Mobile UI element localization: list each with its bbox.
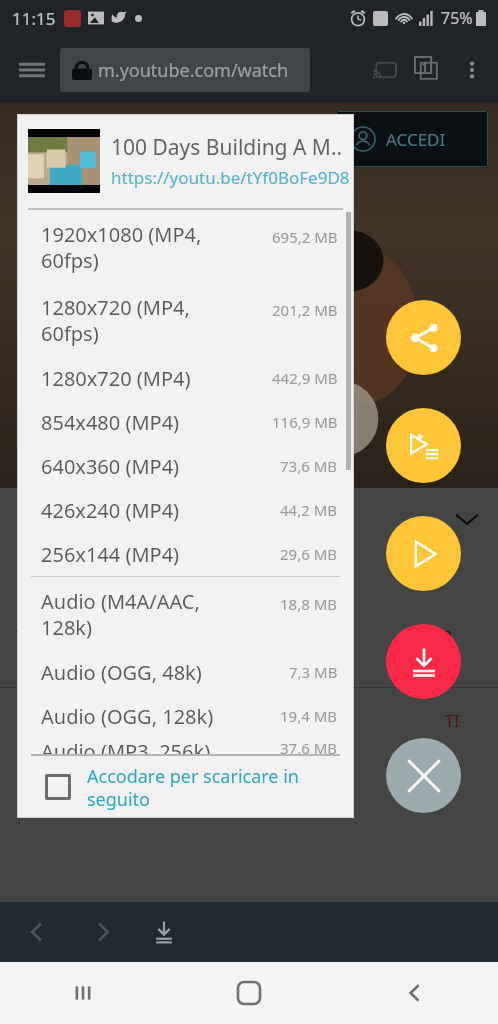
staticText: Audio (MP3, 256k) (41, 738, 280, 754)
staticText: 7,3 MB (289, 662, 338, 682)
staticText: TI (445, 710, 460, 732)
staticText: https://youtu.be/tYf0BoFe9D8 (111, 166, 350, 189)
button[interactable]: 640x360 (MP4) (17, 444, 354, 488)
staticText: 11:15 (12, 7, 56, 30)
button[interactable]: 256x144 (MP4) (17, 532, 354, 576)
button[interactable]: m.youtube.com/watch (60, 48, 310, 92)
staticText: 201,2 MB (272, 300, 338, 320)
button[interactable]: More options (450, 48, 494, 92)
staticText: 426x240 (MP4) (41, 497, 280, 524)
staticText: 18,8 MB (280, 594, 338, 614)
button[interactable]: Downloads (138, 906, 190, 958)
staticText: 100 Days Building A M.. (111, 133, 343, 162)
button[interactable]: Recents (0, 962, 166, 1024)
staticText: 37,6 MB (280, 738, 338, 754)
staticText: 1280x720 (MP4, 60fps) (41, 294, 272, 346)
staticText: 1 (421, 58, 429, 76)
staticText: 116,9 MB (272, 412, 338, 432)
button[interactable]: Download (386, 624, 461, 699)
button[interactable]: 426x240 (MP4) (17, 488, 354, 532)
staticText: Commenti · 75.495 (18, 951, 169, 974)
button[interactable]: Audio (OGG, 128k) (17, 694, 354, 738)
staticText: 29,6 MB (280, 544, 338, 564)
button[interactable]: 1280x720 (MP4) (17, 356, 354, 400)
staticText: 44,2 MB (280, 500, 338, 520)
staticText: 75% (441, 7, 473, 29)
staticText: s Ro (16, 496, 56, 523)
button[interactable]: Playlist (386, 408, 461, 483)
staticText: 854x480 (MP4) (41, 409, 272, 436)
staticText: va (16, 623, 33, 643)
staticText: 1920x1080 (MP4, 60fps) (41, 221, 272, 273)
button[interactable]: Tabs (406, 48, 450, 92)
button[interactable]: Audio (MP3, 256k) (17, 738, 354, 754)
button[interactable]: 854x480 (MP4) (17, 400, 354, 444)
button[interactable]: Menu (10, 48, 54, 92)
staticText: ula (430, 623, 452, 643)
button[interactable]: Home (166, 962, 332, 1024)
staticText: Audio (M4A/AAC, 128k) (41, 588, 280, 640)
staticText: 695,2 MB (272, 227, 338, 247)
staticText: 1280x720 (MP4) (41, 365, 272, 392)
staticText: Audio (OGG, 128k) (41, 703, 280, 730)
button[interactable]: Cast (362, 48, 406, 92)
button[interactable]: Play (386, 516, 461, 591)
button[interactable]: Back (332, 962, 498, 1024)
staticText: Accodare per scaricare in seguito (87, 764, 299, 811)
staticText: 442,9 MB (272, 368, 338, 388)
button[interactable]: Forward (76, 906, 128, 958)
staticText: 19,4 MB (280, 706, 338, 726)
staticText: 256x144 (MP4) (41, 541, 280, 568)
staticText: ACCEDI (386, 128, 446, 151)
staticText: m.youtube.com/watch (98, 58, 289, 83)
button[interactable]: Share (386, 300, 461, 375)
staticText: 73,6 MB (280, 456, 338, 476)
button[interactable]: Close (386, 738, 461, 813)
button[interactable]: Accodare per scaricare in seguito (17, 756, 354, 818)
staticText: 640x360 (MP4) (41, 453, 280, 480)
button[interactable]: Audio (OGG, 48k) (17, 650, 354, 694)
button[interactable]: ACCEDI (336, 111, 488, 167)
button[interactable]: Back (12, 906, 64, 958)
button[interactable]: Commenti · 75.495 (18, 938, 480, 986)
button[interactable]: 1920x1080 (MP4, 60fps) (17, 210, 354, 283)
staticText: Audio (OGG, 48k) (41, 659, 289, 686)
button[interactable]: Audio (M4A/AAC, 128k) (17, 577, 354, 650)
button[interactable]: 1280x720 (MP4, 60fps) (17, 283, 354, 356)
